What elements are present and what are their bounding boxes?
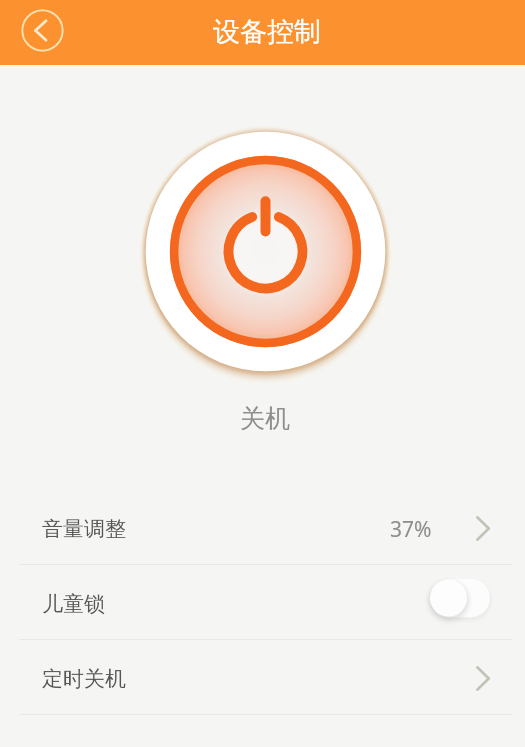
button[interactable]: 儿童锁 bbox=[0, 565, 525, 639]
button[interactable]: Back bbox=[21, 9, 64, 52]
staticText: 儿童锁 bbox=[42, 591, 105, 617]
button[interactable]: Power bbox=[129, 115, 402, 388]
staticText: 音量调整 bbox=[42, 516, 126, 542]
button[interactable]: 音量调整 bbox=[0, 490, 525, 564]
staticText: 设备控制 bbox=[213, 15, 321, 49]
button[interactable]: 定时关机 bbox=[0, 640, 525, 714]
staticText: 37% bbox=[390, 515, 432, 544]
button[interactable]: Child lock toggle bbox=[424, 571, 496, 625]
staticText: 关机 bbox=[240, 403, 290, 434]
staticText: 定时关机 bbox=[42, 666, 126, 692]
